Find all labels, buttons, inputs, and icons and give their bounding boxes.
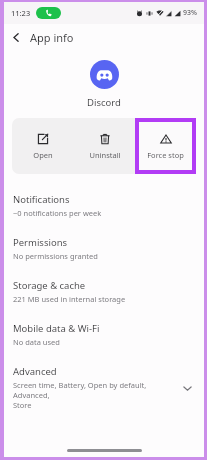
staticText: Discord xyxy=(87,96,121,109)
button[interactable]: Open xyxy=(12,118,74,174)
staticText: Screen time, Battery, Open by default, A… xyxy=(13,380,178,410)
button[interactable]: Advanced xyxy=(4,356,204,419)
staticText: No data used xyxy=(13,337,60,347)
staticText: Open xyxy=(33,150,53,160)
staticText: 221 MB used in internal storage xyxy=(13,294,126,304)
button[interactable]: Uninstall xyxy=(74,118,135,174)
button[interactable]: Back xyxy=(4,25,28,49)
button[interactable]: Storage & cache xyxy=(4,270,204,313)
staticText: 93% xyxy=(183,8,197,18)
staticText: 11:23 xyxy=(11,8,31,18)
staticText: ~0 notifications per week xyxy=(13,208,102,218)
staticText: Notifications xyxy=(13,193,70,206)
button[interactable]: Force stop xyxy=(139,122,192,170)
staticText: Mobile data & Wi-Fi xyxy=(13,322,100,335)
staticText: Uninstall xyxy=(89,150,121,160)
button[interactable]: Mobile data & Wi-Fi xyxy=(4,313,204,356)
staticText: Storage & cache xyxy=(13,279,86,292)
staticText: Permissions xyxy=(13,236,68,249)
staticText: App info xyxy=(30,30,74,45)
button[interactable]: Notifications xyxy=(4,184,204,227)
button[interactable]: Permissions xyxy=(4,227,204,270)
staticText: No permissions granted xyxy=(13,251,98,261)
staticText: Force stop xyxy=(147,150,184,160)
other: Expand xyxy=(178,379,196,397)
staticText: Advanced xyxy=(13,365,57,378)
